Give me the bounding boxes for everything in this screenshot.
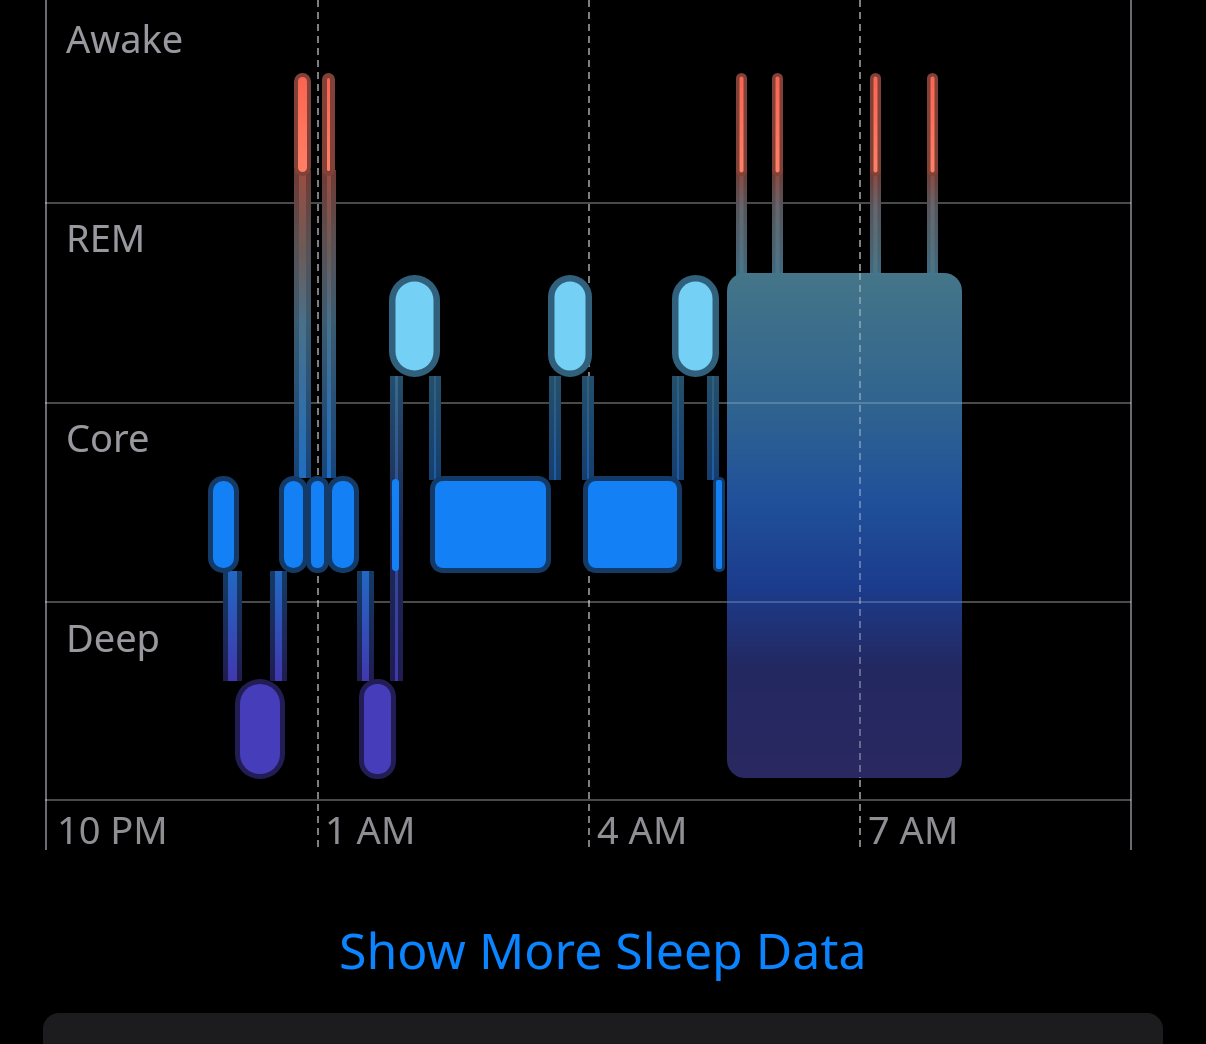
- button[interactable]: Show More Sleep Data: [339, 916, 867, 984]
- staticText: 10 PM: [57, 803, 168, 855]
- staticText: 1 AM: [325, 803, 416, 855]
- staticText: REM: [66, 211, 146, 263]
- staticText: Core: [66, 411, 150, 463]
- staticText: 7 AM: [868, 803, 959, 855]
- staticText: Deep: [66, 611, 160, 663]
- staticText: 4 AM: [597, 803, 688, 855]
- staticText: Awake: [66, 12, 184, 64]
